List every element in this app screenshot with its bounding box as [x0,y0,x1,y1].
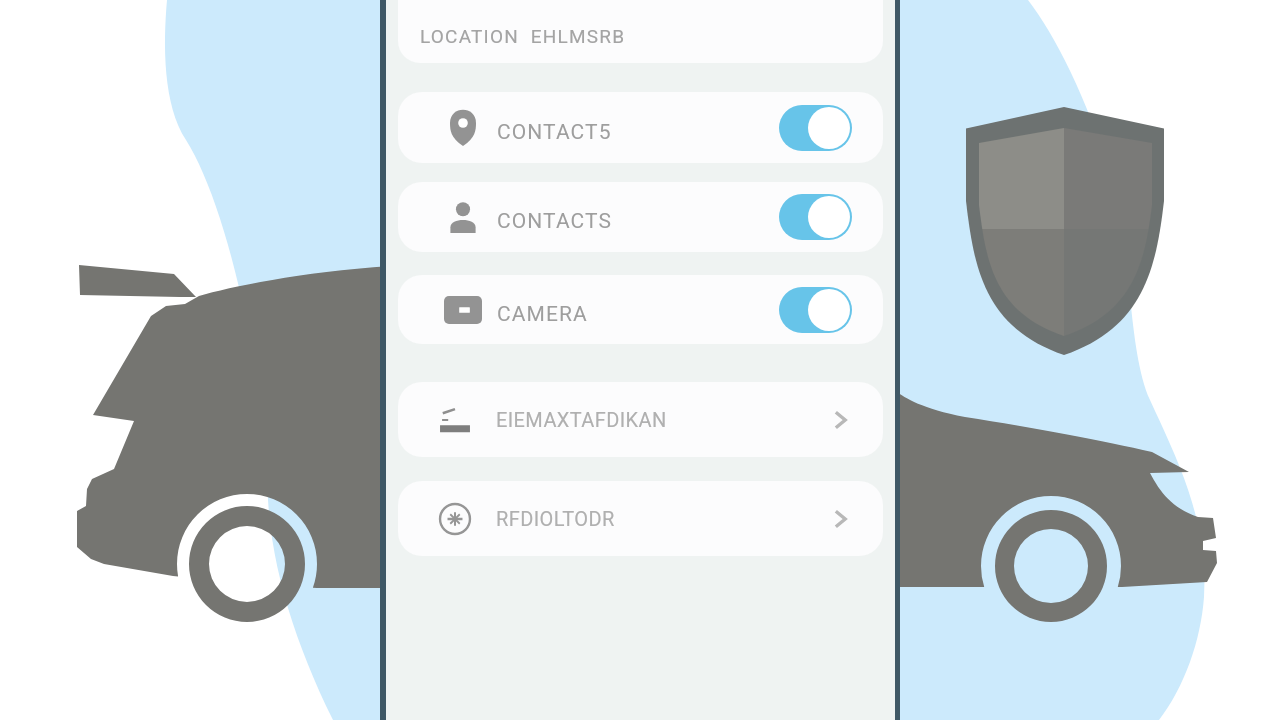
staticText: RFDIOLTODR [496,507,615,530]
other: Open [827,407,853,433]
staticText: EIEMAXTAFDIKAN [496,408,667,431]
button[interactable]: CONTACT5 [398,92,883,163]
staticText: CONTACT5 [497,120,612,145]
staticText: CAMERA [497,302,588,327]
staticText: LOCATION EHLMSRB [420,25,626,47]
other: Open [827,506,853,532]
button[interactable]: EIEMAXTAFDIKAN [398,382,883,457]
staticText: CONTACTS [497,209,613,234]
button[interactable]: CONTACTS [398,182,883,252]
button[interactable]: RFDIOLTODR [398,481,883,556]
button[interactable]: CAMERA [398,275,883,344]
